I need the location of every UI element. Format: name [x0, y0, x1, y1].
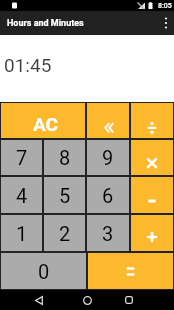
- staticText: AC: [33, 113, 59, 135]
- staticText: 5: [59, 184, 71, 207]
- button[interactable]: [26, 290, 52, 310]
- staticText: 0: [38, 260, 50, 283]
- button[interactable]: 1: [1, 215, 42, 251]
- button[interactable]: 6: [87, 177, 129, 213]
- button[interactable]: [87, 103, 129, 138]
- staticText: 6: [102, 184, 114, 207]
- staticText: Hours and Minutes: [7, 18, 84, 29]
- staticText: 8:05: [158, 2, 172, 10]
- staticText: 2: [59, 222, 71, 245]
- button[interactable]: 9: [87, 140, 129, 175]
- staticText: 8: [59, 146, 71, 169]
- button[interactable]: AC: [1, 103, 85, 138]
- button[interactable]: [88, 253, 173, 289]
- staticText: 7: [16, 146, 28, 169]
- button[interactable]: 8: [44, 140, 85, 175]
- button[interactable]: 2: [44, 215, 85, 251]
- staticText: 4: [16, 184, 28, 207]
- button[interactable]: 7: [1, 140, 42, 175]
- staticText: 9: [102, 146, 114, 169]
- button[interactable]: [131, 103, 173, 138]
- staticText: 01:45: [4, 54, 52, 76]
- staticText: 3: [102, 222, 114, 245]
- button[interactable]: [115, 290, 142, 310]
- staticText: 1: [16, 222, 28, 245]
- button[interactable]: 3: [87, 215, 129, 251]
- button[interactable]: [131, 177, 173, 213]
- button[interactable]: [131, 215, 173, 251]
- button[interactable]: 0: [1, 253, 86, 289]
- button[interactable]: 4: [1, 177, 42, 213]
- button[interactable]: [158, 11, 174, 35]
- button[interactable]: [74, 290, 101, 310]
- button[interactable]: 5: [44, 177, 85, 213]
- button[interactable]: [131, 140, 173, 175]
